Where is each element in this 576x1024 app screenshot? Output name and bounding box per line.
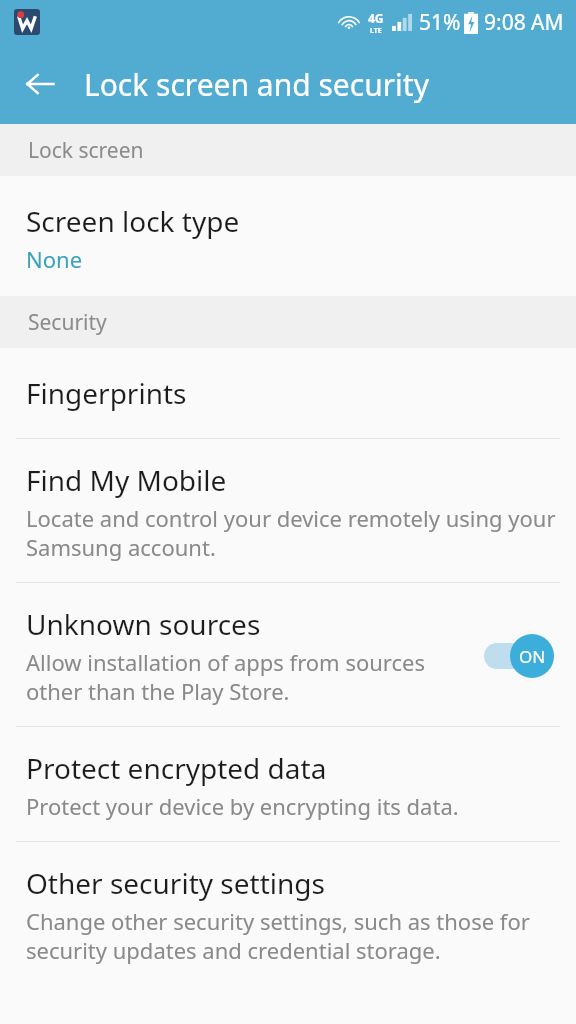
button[interactable]: Screen lock type — [0, 176, 576, 296]
staticText: Security — [28, 308, 107, 337]
staticText: LTE — [370, 26, 382, 36]
staticText: Find My Mobile — [26, 461, 227, 499]
button[interactable]: Protect encrypted data — [0, 727, 576, 841]
staticText: Lock screen and security — [84, 64, 429, 105]
staticText: Fingerprints — [26, 374, 187, 412]
staticText: Lock screen — [28, 136, 144, 165]
staticText: 4G — [368, 10, 384, 26]
button[interactable]: Other security settings — [0, 842, 576, 985]
staticText: 9:08 AM — [484, 8, 564, 37]
staticText: None — [26, 244, 83, 274]
staticText: Unknown sources — [26, 605, 261, 643]
staticText: Other security settings — [26, 864, 325, 902]
staticText: Protect your device by encrypting its da… — [26, 791, 459, 821]
staticText: Change other security settings, such as … — [26, 906, 556, 965]
button[interactable]: Unknown sources toggle, on — [482, 633, 556, 679]
button[interactable]: Find My Mobile — [0, 439, 576, 582]
staticText: ON — [519, 645, 546, 668]
button[interactable]: Back — [14, 58, 66, 110]
staticText: Screen lock type — [26, 202, 240, 240]
button[interactable]: Unknown sources — [0, 583, 576, 726]
staticText: Allow installation of apps from sources … — [26, 647, 472, 706]
staticText: Protect encrypted data — [26, 749, 327, 787]
button[interactable]: Fingerprints — [0, 348, 576, 438]
staticText: 51% — [419, 8, 461, 37]
staticText: Locate and control your device remotely … — [26, 503, 556, 562]
